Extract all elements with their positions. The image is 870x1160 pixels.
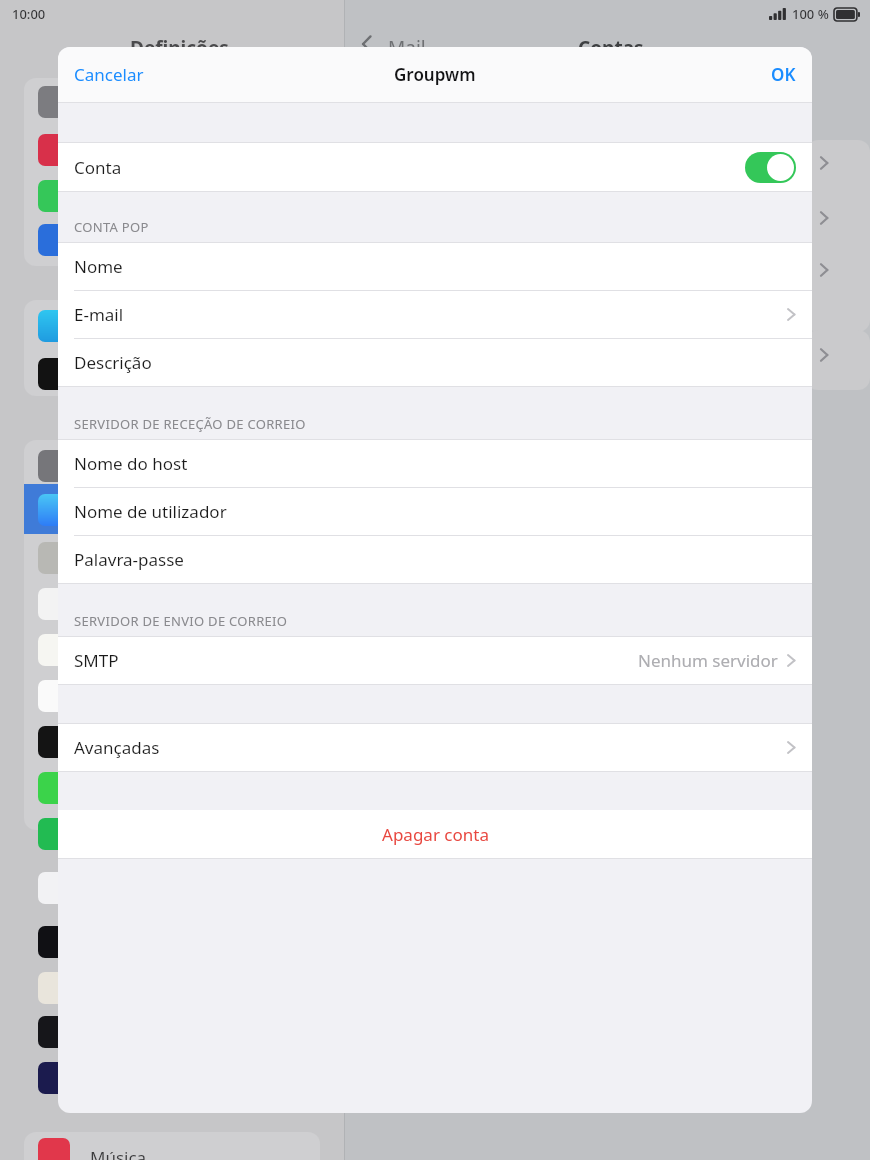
button[interactable]: E-mail xyxy=(58,291,812,338)
staticText: Descrição xyxy=(74,351,152,374)
staticText: SERVIDOR DE RECEÇÃO DE CORREIO xyxy=(74,415,306,433)
button[interactable]: SMTP xyxy=(58,637,812,684)
button[interactable]: Conta xyxy=(58,143,812,191)
button[interactable]: Nome do host xyxy=(58,440,812,487)
staticText: Conta xyxy=(74,156,122,179)
staticText: Música xyxy=(90,1146,147,1160)
staticText: OK xyxy=(771,63,796,86)
staticText: Nenhum servidor xyxy=(638,649,778,672)
button[interactable]: Nome de utilizador xyxy=(58,488,812,535)
button[interactable]: Conta activada xyxy=(745,152,796,183)
staticText: Groupwm xyxy=(394,63,476,86)
staticText: Definições xyxy=(130,35,229,61)
button[interactable]: Nome xyxy=(58,243,812,290)
button[interactable]: Apagar conta xyxy=(58,810,812,858)
staticText: SERVIDOR DE ENVIO DE CORREIO xyxy=(74,612,288,630)
staticText: SMTP xyxy=(74,649,119,672)
staticText: Nome xyxy=(74,255,123,278)
staticText: Avançadas xyxy=(74,736,160,759)
staticText: Nome de utilizador xyxy=(74,500,227,523)
button[interactable]: Cancelar xyxy=(62,55,156,94)
staticText: Mail xyxy=(388,35,426,61)
button[interactable]: Descrição xyxy=(58,339,812,386)
staticText: Apagar conta xyxy=(382,823,489,846)
button[interactable]: Avançadas xyxy=(58,724,812,771)
staticText: Cancelar xyxy=(74,63,144,86)
staticText: E-mail xyxy=(74,303,124,326)
button[interactable]: OK xyxy=(759,55,808,94)
staticText: Contas xyxy=(578,35,644,61)
button[interactable]: Palavra-passe xyxy=(58,536,812,583)
staticText: 100 % xyxy=(792,5,829,23)
staticText: Palavra-passe xyxy=(74,548,184,571)
staticText: CONTA POP xyxy=(74,218,149,236)
staticText: Nome do host xyxy=(74,452,188,475)
staticText: 10:00 xyxy=(12,5,46,23)
